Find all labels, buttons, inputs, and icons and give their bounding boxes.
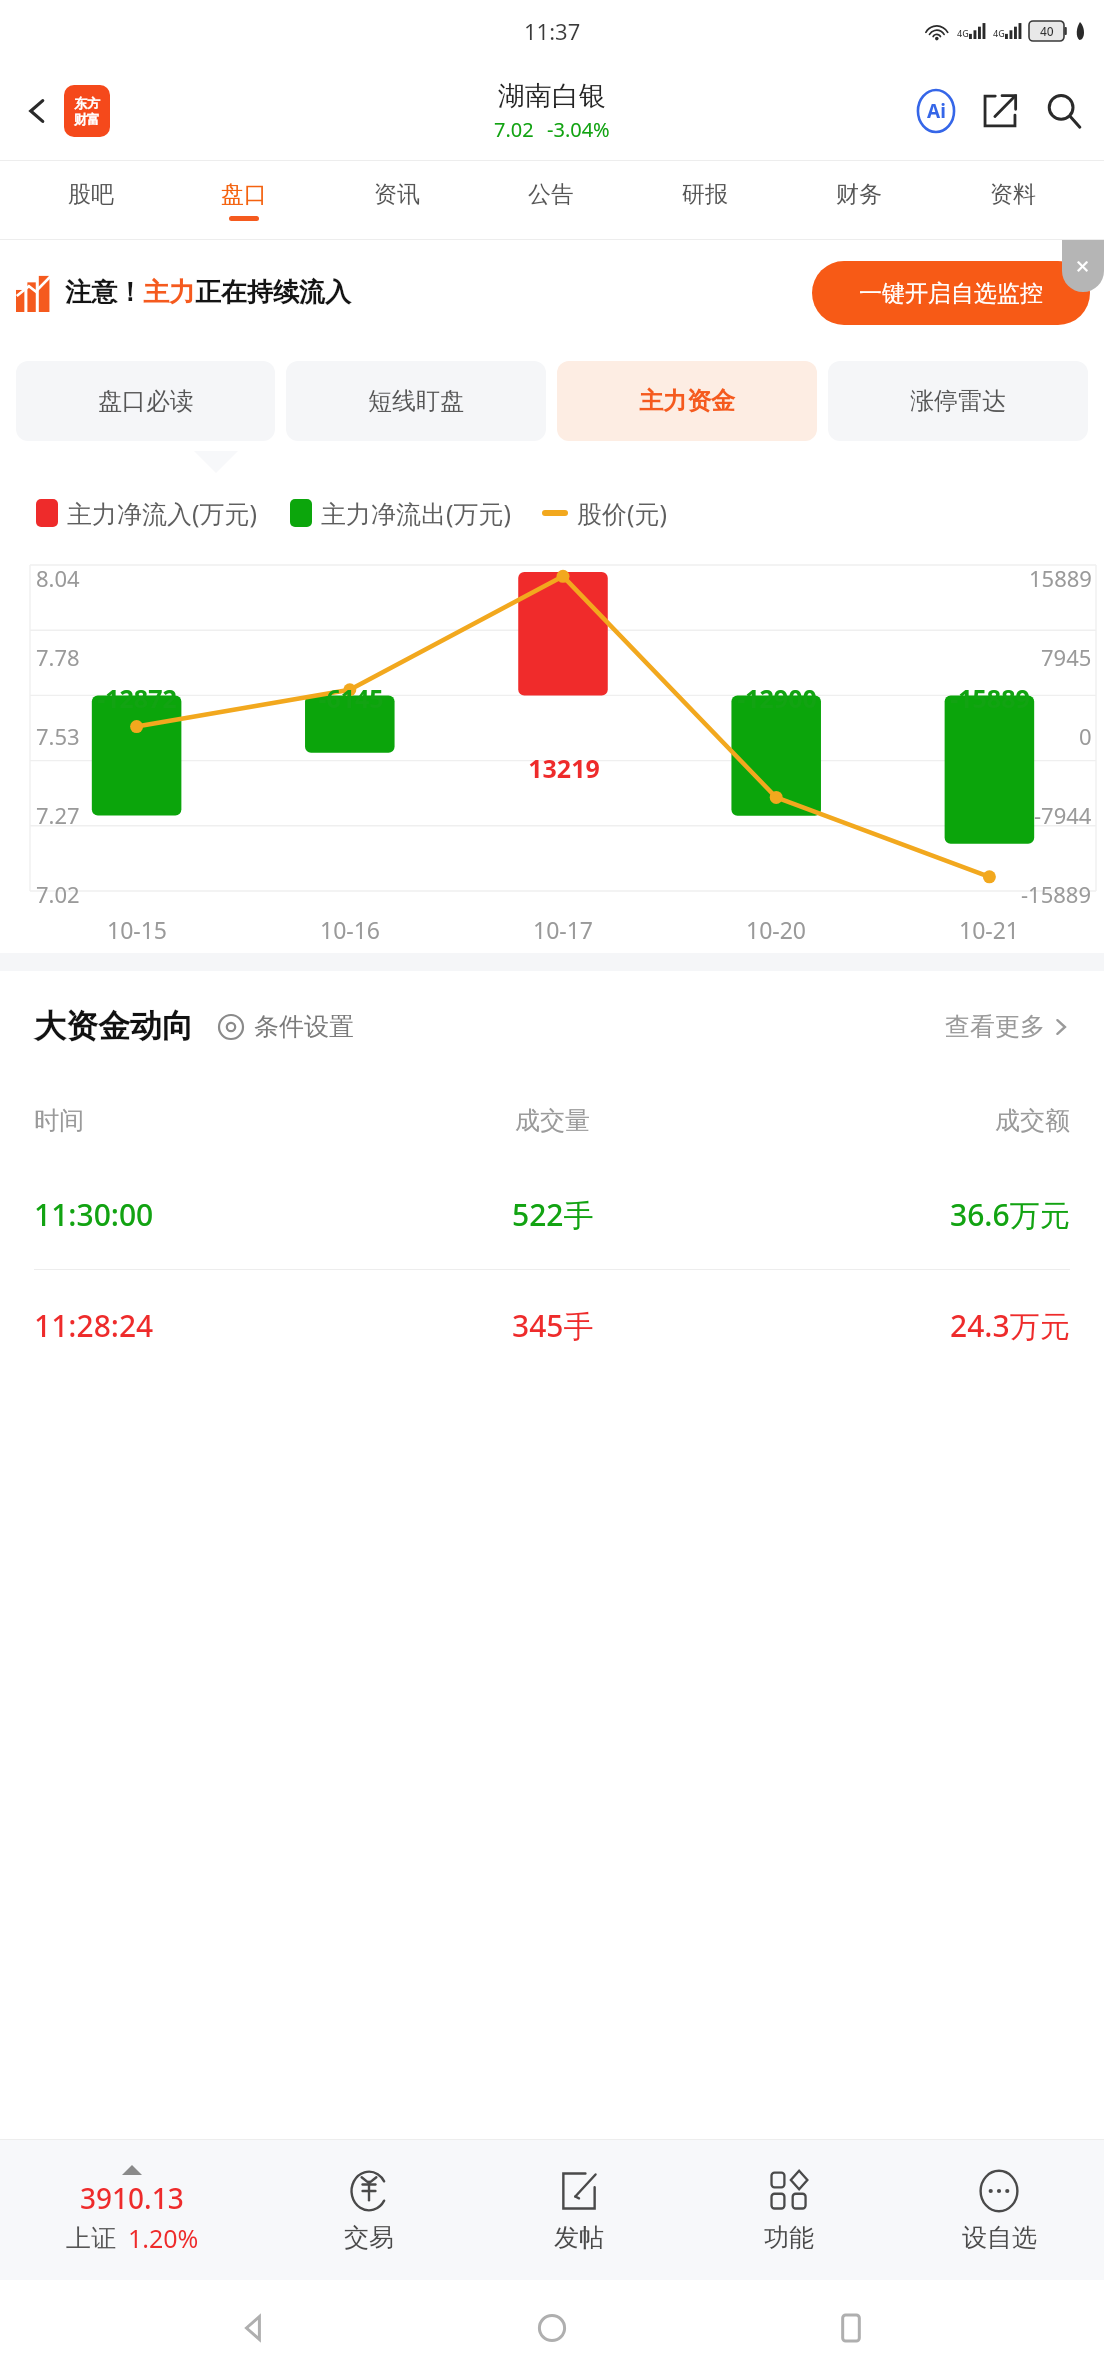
staticText: 10-21 — [959, 914, 1020, 945]
button[interactable]: Close — [1062, 240, 1104, 292]
button[interactable]: 设自选 — [894, 2140, 1104, 2280]
staticText: 10-20 — [746, 914, 807, 945]
button[interactable]: 11:28:24 — [0, 1270, 1104, 1380]
staticText: 正在持续流入 — [195, 276, 351, 309]
staticText: 345手 — [512, 1305, 594, 1346]
staticText: 15889 — [1029, 563, 1092, 593]
staticText: 1.20% — [128, 2221, 199, 2255]
staticText: 公告 — [528, 180, 574, 209]
staticText: 查看更多 — [945, 1011, 1045, 1042]
staticText: 主力 — [143, 276, 195, 309]
staticText: 7.27 — [36, 800, 80, 830]
staticText: 0 — [1079, 721, 1092, 751]
staticText: 8.04 — [36, 563, 80, 593]
staticText: 7945 — [1041, 642, 1092, 672]
staticText: -12900 — [737, 681, 817, 715]
button[interactable]: 一键开启自选监控 — [812, 261, 1090, 325]
staticText: 40 — [1040, 23, 1054, 39]
staticText: 13219 — [528, 751, 600, 785]
staticText: 时间 — [34, 1105, 84, 1136]
staticText: 11:37 — [524, 16, 581, 46]
staticText: 36.6万元 — [950, 1194, 1070, 1235]
button[interactable]: Back — [10, 84, 64, 138]
staticText: 主力净流入(万元) — [67, 496, 258, 530]
button[interactable]: 短线盯盘 — [286, 361, 546, 441]
staticText: 短线盯盘 — [368, 386, 464, 416]
button[interactable]: AI — [908, 83, 964, 139]
button[interactable]: 条件设置 — [216, 1011, 354, 1042]
staticText: 股吧 — [68, 180, 114, 209]
staticText: 主力资金 — [639, 386, 735, 416]
staticText: 财务 — [836, 180, 882, 209]
staticText: 涨停雷达 — [910, 386, 1006, 416]
button[interactable]: 研报 — [628, 161, 782, 239]
button[interactable]: Search — [1036, 83, 1092, 139]
staticText: 11:28:24 — [34, 1305, 154, 1346]
button[interactable]: 发帖 — [474, 2140, 684, 2280]
staticText: 东方 — [74, 95, 100, 111]
button[interactable]: 3910.13 — [0, 2140, 264, 2280]
button[interactable]: 股吧 — [14, 161, 167, 239]
button[interactable]: 资料 — [936, 161, 1090, 239]
button[interactable]: 主力资金 — [557, 361, 817, 441]
staticText: 大资金动向 — [34, 1006, 194, 1046]
staticText: 湖南白银 — [498, 79, 606, 113]
button[interactable]: 资讯 — [320, 161, 474, 239]
staticText: 7.02 — [36, 879, 80, 909]
staticText: 资料 — [990, 180, 1036, 209]
button[interactable]: 11:30:00 — [0, 1159, 1104, 1269]
staticText: 上证 — [66, 2223, 116, 2254]
button[interactable]: 交易 — [264, 2140, 474, 2280]
staticText: -7944 — [1034, 800, 1092, 830]
staticText: 发帖 — [554, 2222, 604, 2253]
staticText: 10-16 — [320, 914, 381, 945]
staticText: 一键开启自选监控 — [859, 279, 1043, 308]
staticText: 盘口 — [221, 180, 267, 209]
button[interactable]: Back — [209, 2283, 299, 2373]
button[interactable]: 涨停雷达 — [828, 361, 1088, 441]
staticText: 24.3万元 — [950, 1305, 1070, 1346]
staticText: 成交额 — [995, 1105, 1070, 1136]
staticText: 7.78 — [36, 642, 80, 672]
staticText: 7.53 — [36, 721, 80, 751]
staticText: 成交量 — [515, 1105, 590, 1136]
staticText: 资讯 — [374, 180, 420, 209]
staticText: 设自选 — [962, 2222, 1037, 2253]
button[interactable]: Recents — [806, 2283, 896, 2373]
staticText: 盘口必读 — [98, 386, 194, 416]
staticText: 11:30:00 — [34, 1194, 154, 1235]
staticText: -3.04% — [547, 116, 610, 143]
button[interactable]: 盘口 — [167, 161, 320, 239]
staticText: -15889 — [950, 681, 1030, 715]
staticText: Ai — [927, 98, 946, 124]
staticText: 3910.13 — [80, 2179, 184, 2217]
staticText: 股价(元) — [577, 496, 668, 530]
button[interactable]: 查看更多 — [945, 1011, 1070, 1042]
staticText: 10-15 — [107, 914, 168, 945]
staticText: 522手 — [512, 1194, 594, 1235]
button[interactable]: 公告 — [474, 161, 628, 239]
button[interactable]: Share — [972, 83, 1028, 139]
staticText: 功能 — [764, 2222, 814, 2253]
staticText: 4G — [957, 27, 969, 39]
staticText: -15889 — [1021, 879, 1092, 909]
staticText: 10-17 — [533, 914, 594, 945]
button[interactable]: 东方财富 — [64, 85, 110, 137]
staticText: 条件设置 — [254, 1011, 354, 1042]
button[interactable]: 盘口必读 — [16, 361, 275, 441]
staticText: 4G — [993, 27, 1005, 39]
staticText: 注意！ — [65, 276, 143, 309]
staticText: ✕ — [1075, 256, 1091, 277]
button[interactable]: Home — [507, 2283, 597, 2373]
staticText: 7.02 — [494, 116, 534, 143]
staticText: 研报 — [682, 180, 728, 209]
staticText: 主力净流出(万元) — [321, 496, 512, 530]
staticText: -6145 — [318, 681, 384, 715]
staticText: 交易 — [344, 2222, 394, 2253]
button[interactable]: 功能 — [684, 2140, 894, 2280]
staticText: -12872 — [97, 681, 177, 715]
button[interactable]: 财务 — [782, 161, 936, 239]
staticText: 财富 — [74, 111, 100, 127]
